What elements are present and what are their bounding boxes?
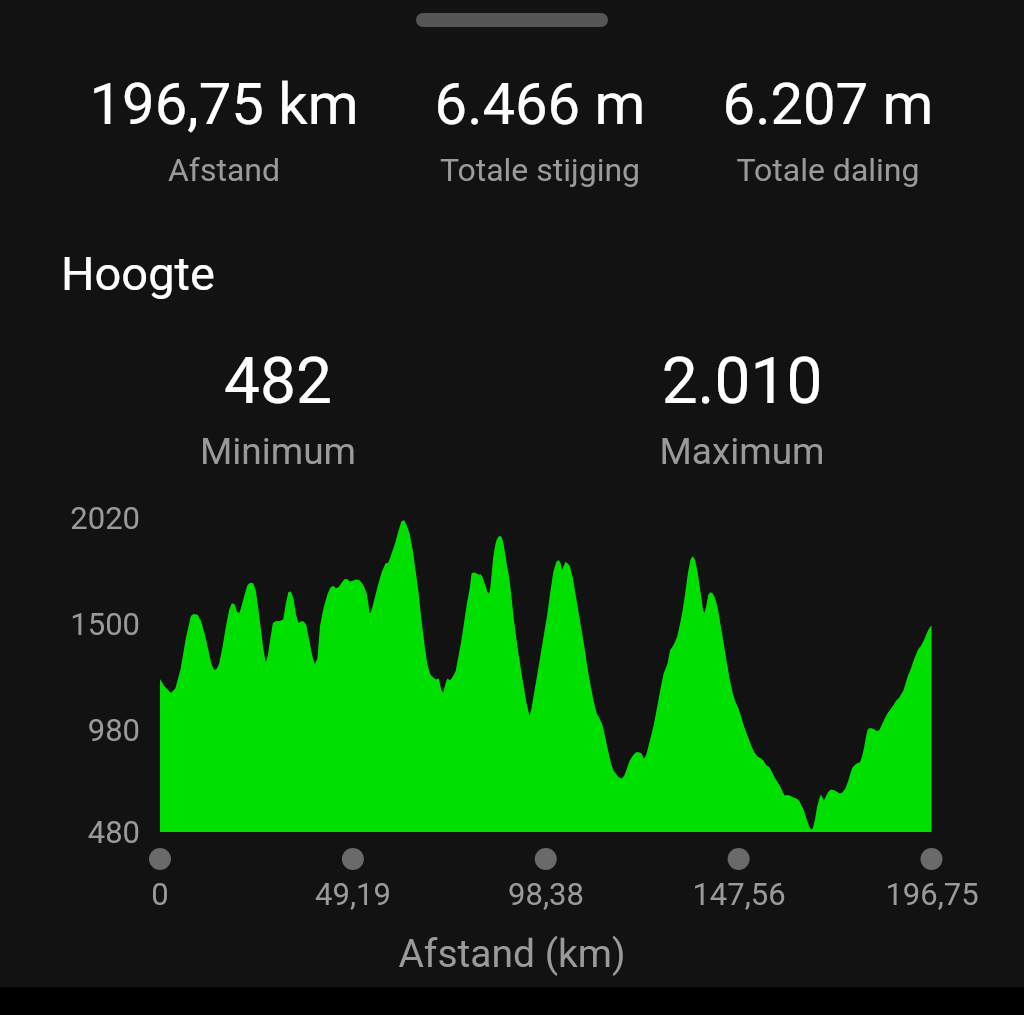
staticText: 147,56	[639, 876, 839, 912]
staticText: Afstand (km)	[312, 931, 712, 977]
staticText: 196,75 km	[14, 70, 434, 138]
staticText: 49,19	[253, 876, 453, 912]
staticText: 98,38	[446, 876, 646, 912]
button[interactable]: Hoogte	[61, 246, 215, 301]
button[interactable]: 6.466 m	[330, 70, 750, 189]
staticText: Totale daling	[618, 151, 1024, 189]
staticText: 196,75	[832, 876, 1024, 912]
staticText: 0	[60, 876, 260, 912]
button[interactable]: Drag handle	[416, 13, 608, 27]
staticText: 2.010	[532, 344, 952, 419]
staticText: 482	[68, 344, 488, 419]
button[interactable]: 482	[68, 344, 488, 473]
staticText: Hoogte	[61, 246, 215, 301]
button[interactable]: 6.207 m	[618, 70, 1024, 189]
staticText: Minimum	[68, 430, 488, 473]
button[interactable]: 196,75 km	[14, 70, 434, 189]
staticText: 6.466 m	[330, 70, 750, 138]
staticText: Totale stijging	[330, 151, 750, 189]
staticText: 6.207 m	[618, 70, 1024, 138]
button[interactable]: 2.010	[532, 344, 952, 473]
staticText: Afstand	[14, 151, 434, 189]
staticText: 2020	[0, 500, 140, 536]
staticText: 980	[0, 712, 140, 748]
staticText: 480	[0, 814, 140, 850]
staticText: 1500	[0, 606, 140, 642]
staticText: Maximum	[532, 430, 952, 473]
